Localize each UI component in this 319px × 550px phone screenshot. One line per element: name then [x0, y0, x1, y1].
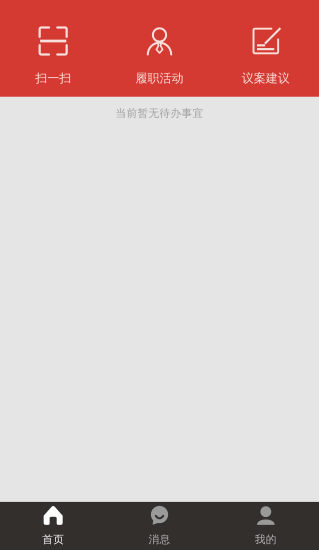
button[interactable]: 我的 [213, 502, 319, 550]
staticText: 消息 [148, 533, 170, 546]
button[interactable]: 消息 [106, 502, 213, 550]
staticText: 议案建议 [242, 71, 290, 86]
staticText: 履职活动 [135, 71, 183, 86]
staticText: 我的 [255, 533, 277, 546]
button[interactable]: 扫一扫 [0, 0, 106, 97]
button[interactable]: 履职活动 [106, 0, 213, 97]
button[interactable]: 首页 [0, 502, 106, 550]
staticText: 首页 [42, 533, 64, 546]
button[interactable]: 议案建议 [213, 0, 319, 97]
staticText: 扫一扫 [35, 71, 71, 86]
staticText: 当前暂无待办事宜 [115, 107, 203, 120]
